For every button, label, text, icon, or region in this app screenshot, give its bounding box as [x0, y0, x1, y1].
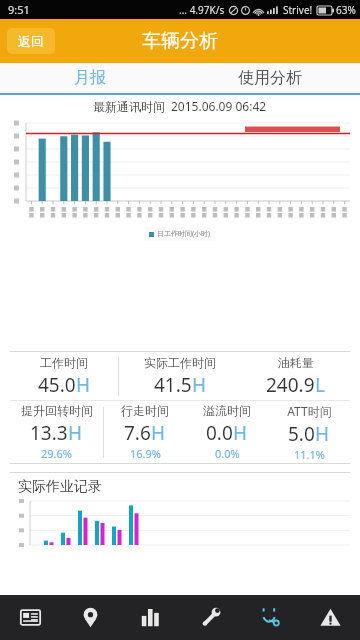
staticText: 溢流时间	[203, 403, 251, 418]
staticText: 返回	[18, 33, 44, 49]
staticText: 29.6%	[41, 446, 72, 461]
staticText: 实际工作时间	[144, 355, 216, 370]
staticText: 45.0	[38, 372, 76, 398]
staticText: 240.9	[266, 372, 315, 398]
staticText: 41.5	[154, 372, 192, 398]
staticText: H	[192, 372, 207, 398]
button[interactable]: ATT时间	[268, 401, 350, 463]
staticText: 11.1%	[294, 447, 325, 462]
staticText: 0.0%	[215, 446, 240, 461]
staticText: 工作时间	[40, 355, 88, 370]
button[interactable]: Diagnostics	[240, 595, 300, 640]
staticText: 车辆分析	[142, 29, 218, 53]
staticText: Strive!	[283, 3, 313, 17]
staticText: H	[315, 421, 330, 447]
staticText: 2015.06.09 06:42	[171, 98, 267, 114]
button[interactable]: 使用分析	[180, 63, 360, 93]
button[interactable]: 提升回转时间	[10, 401, 103, 463]
staticText: 最新通讯时间	[93, 99, 165, 114]
staticText: 7.6	[124, 420, 151, 446]
button[interactable]: Maintenance	[180, 595, 240, 640]
button[interactable]: 工作时间	[10, 352, 118, 400]
staticText: 提升回转时间	[21, 403, 93, 418]
button[interactable]: Alerts	[300, 595, 360, 640]
button[interactable]: Location	[60, 595, 120, 640]
staticText: 使用分析	[238, 68, 302, 88]
button[interactable]: 实际工作时间	[119, 352, 241, 400]
staticText: 油耗量	[278, 355, 314, 370]
staticText: ATT时间	[287, 403, 332, 419]
button[interactable]: 行走时间	[104, 401, 186, 463]
button[interactable]: Statistics	[120, 595, 180, 640]
button[interactable]: 油耗量	[241, 352, 350, 400]
button[interactable]: 溢流时间	[186, 401, 268, 463]
button[interactable]: News	[0, 595, 60, 640]
staticText: 行走时间	[121, 403, 169, 418]
staticText: 16.9%	[130, 446, 161, 461]
staticText: 5.0	[288, 421, 315, 447]
button[interactable]: 月报	[0, 63, 180, 93]
staticText: 63%	[336, 3, 356, 17]
staticText: H	[68, 420, 83, 446]
staticText: 0.0	[206, 420, 233, 446]
staticText: 实际作业记录	[18, 478, 102, 496]
staticText: L	[315, 372, 325, 398]
staticText: H	[76, 372, 91, 398]
staticText: H	[151, 420, 166, 446]
staticText: 9:51	[8, 2, 30, 17]
staticText: H	[233, 420, 248, 446]
staticText: 月报	[74, 68, 106, 88]
staticText: 13.3	[30, 420, 68, 446]
button[interactable]: 返回	[7, 28, 55, 54]
staticText: 日工作时间(小时)	[157, 229, 211, 239]
staticText: ... 4.97K/s	[179, 3, 225, 17]
